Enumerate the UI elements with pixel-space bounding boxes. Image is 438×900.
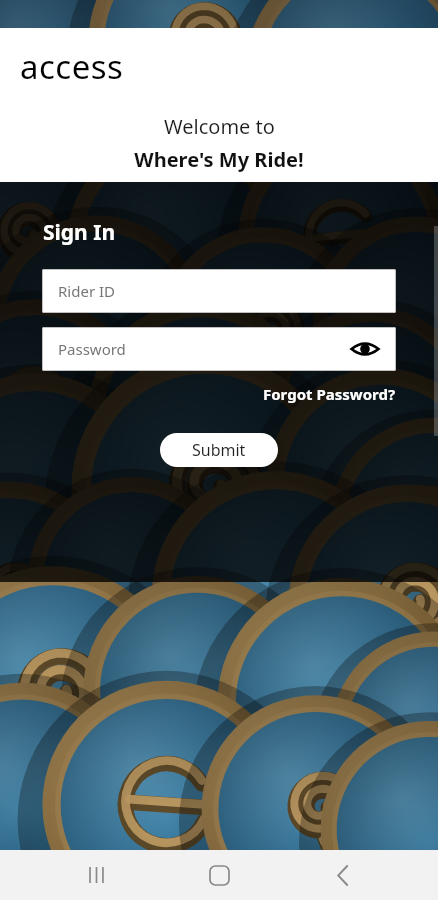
button[interactable]: Rider ID <box>42 269 396 313</box>
button[interactable]: Forgot Password? <box>263 381 396 407</box>
button[interactable]: Home <box>191 850 247 900</box>
button[interactable]: Recent apps <box>68 850 124 900</box>
staticText: Rider ID <box>58 281 116 301</box>
button[interactable]: Back <box>315 850 371 900</box>
staticText: Password <box>58 339 126 359</box>
staticText: access <box>20 44 124 89</box>
staticText: Sign In <box>43 218 116 247</box>
button[interactable]: Submit <box>160 433 278 467</box>
button[interactable]: Show password <box>348 332 382 366</box>
staticText: Where's My Ride! <box>134 146 304 173</box>
button[interactable]: Password <box>42 327 396 371</box>
staticText: Welcome to <box>164 113 275 140</box>
staticText: Submit <box>192 439 246 461</box>
